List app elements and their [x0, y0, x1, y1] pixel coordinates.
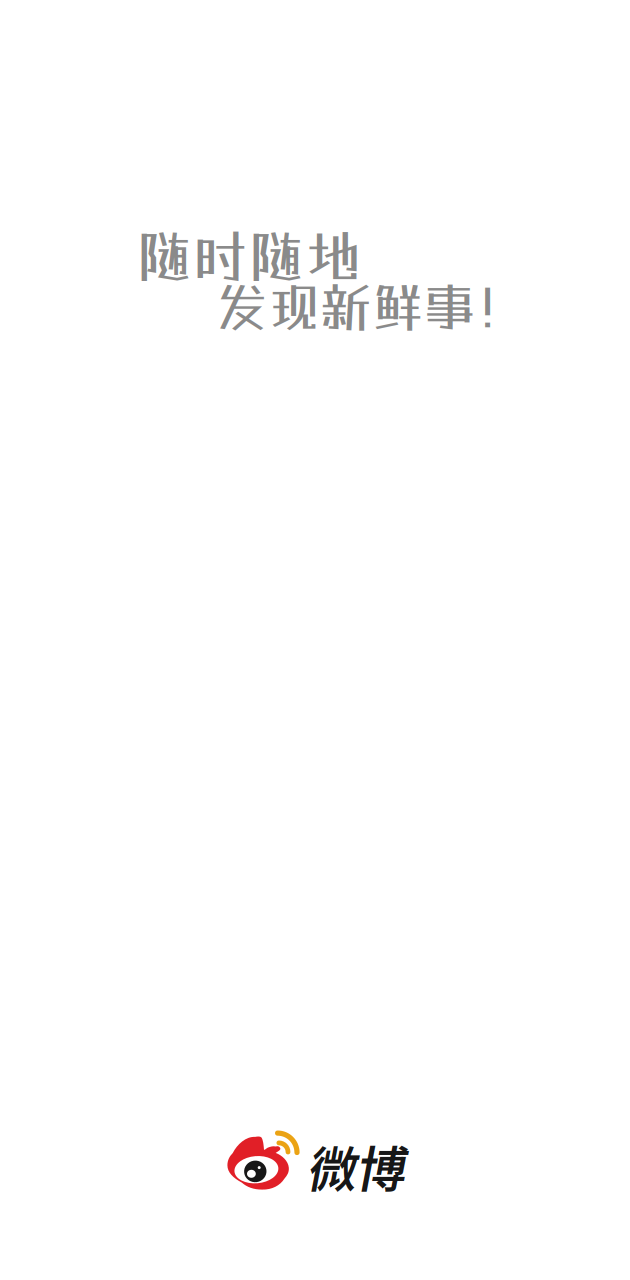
staticText: 发现新鲜事！	[216, 276, 528, 337]
staticText: 随时随地	[137, 223, 361, 289]
staticText: 微博	[309, 1140, 407, 1198]
